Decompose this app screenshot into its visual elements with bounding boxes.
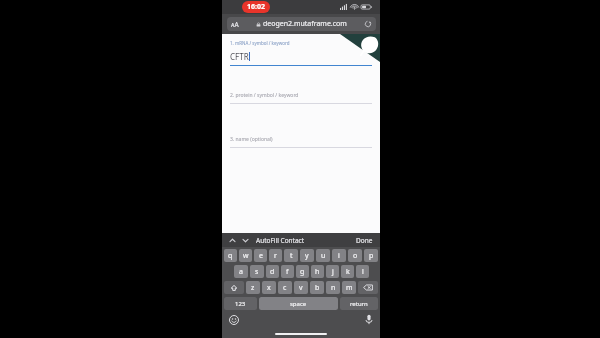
button[interactable]: s (250, 265, 264, 278)
staticText: l (362, 267, 364, 277)
button[interactable]: i (332, 249, 346, 262)
button[interactable]: l (356, 265, 369, 278)
button[interactable]: Text size options (231, 20, 239, 29)
button[interactable]: t (284, 249, 298, 262)
staticText: g (300, 267, 305, 277)
button[interactable]: y (300, 249, 314, 262)
button[interactable]: b (310, 281, 324, 294)
button[interactable]: z (246, 281, 260, 294)
button[interactable]: a (234, 265, 248, 278)
staticText: return (350, 300, 368, 308)
button[interactable]: u (316, 249, 330, 262)
button[interactable]: Reload (364, 20, 372, 28)
staticText: w (243, 251, 249, 261)
staticText: 16:02 (247, 2, 265, 12)
staticText: t (290, 251, 293, 261)
button[interactable]: m (342, 281, 356, 294)
staticText: ᴀA (231, 20, 239, 29)
button[interactable]: Delete (358, 281, 378, 294)
staticText: space (290, 300, 307, 308)
button[interactable]: k (341, 265, 354, 278)
button[interactable]: q (224, 249, 237, 262)
staticText: Done (356, 236, 373, 245)
button[interactable]: r (269, 249, 282, 262)
button[interactable]: e (254, 249, 267, 262)
button[interactable]: w (239, 249, 252, 262)
staticText: e (259, 251, 263, 261)
button[interactable]: space (259, 297, 338, 310)
staticText: c (283, 283, 287, 293)
staticText: deogen2.mutaframe.com (263, 19, 347, 29)
button[interactable]: d (266, 265, 279, 278)
button[interactable]: Done (356, 236, 373, 245)
staticText: i (338, 251, 340, 261)
staticText: y (305, 251, 309, 261)
staticText: k (346, 267, 350, 277)
staticText: z (251, 283, 255, 293)
staticText: d (270, 267, 275, 277)
button[interactable]: Previous field (228, 236, 237, 245)
button[interactable]: c (278, 281, 292, 294)
button[interactable]: Text size options (227, 17, 376, 31)
staticText: n (331, 283, 336, 293)
staticText: AutoFill Contact (256, 236, 305, 245)
staticText: p (369, 251, 374, 261)
button[interactable]: Dictation (365, 314, 373, 325)
staticText: 123 (235, 300, 246, 308)
staticText: 2. protein / symbol / keyword (230, 92, 299, 99)
staticText: m (346, 283, 353, 293)
button[interactable]: 123 (224, 297, 257, 310)
staticText: j (332, 267, 334, 277)
staticText: s (255, 267, 259, 277)
button[interactable]: return (340, 297, 378, 310)
staticText: CFTR (230, 51, 249, 62)
staticText: h (315, 267, 320, 277)
staticText: r (274, 251, 277, 261)
button[interactable]: v (294, 281, 308, 294)
button[interactable]: p (364, 249, 378, 262)
staticText: a (239, 267, 243, 277)
button[interactable]: x (262, 281, 276, 294)
button[interactable]: g (296, 265, 309, 278)
staticText: u (321, 251, 326, 261)
button[interactable]: f (281, 265, 294, 278)
button[interactable]: AutoFill Contact (256, 236, 305, 245)
button[interactable]: Shift (224, 281, 244, 294)
staticText: 3. name (optional) (230, 136, 273, 143)
button[interactable]: Next field (241, 236, 250, 245)
button[interactable]: Emoji (229, 315, 239, 325)
staticText: o (353, 251, 358, 261)
staticText: 1. mRNA / symbol / keyword (230, 40, 290, 46)
button[interactable]: j (326, 265, 339, 278)
staticText: x (267, 283, 271, 293)
staticText: b (315, 283, 320, 293)
staticText: v (299, 283, 303, 293)
staticText: f (286, 267, 289, 277)
button[interactable]: o (348, 249, 362, 262)
button[interactable]: n (326, 281, 340, 294)
staticText: q (228, 251, 233, 261)
button[interactable]: h (311, 265, 324, 278)
